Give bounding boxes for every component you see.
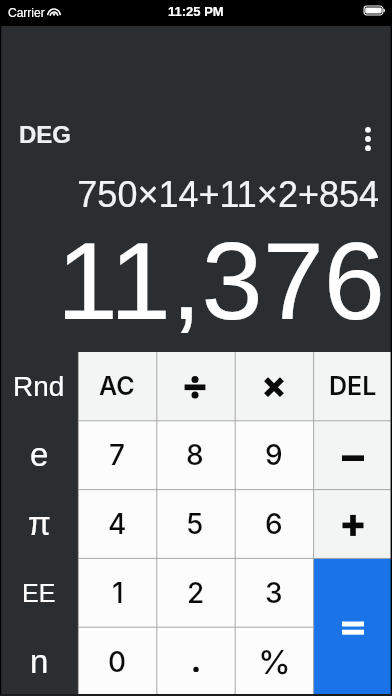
button[interactable]: Multiply (234, 352, 313, 420)
staticText: 7 (109, 438, 125, 472)
staticText: π (28, 505, 51, 542)
button[interactable]: 5 (156, 489, 234, 558)
button[interactable]: 1 (78, 558, 157, 627)
staticText: 11,376 (0, 219, 385, 342)
staticText: 8 (186, 438, 204, 472)
staticText: 1 (112, 576, 124, 610)
staticText: 750×14+11×2+854 (0, 174, 379, 214)
button[interactable]: EE (0, 558, 78, 627)
button[interactable]: % (235, 627, 313, 696)
button[interactable]: 2 (157, 558, 235, 627)
staticText: n (30, 643, 49, 680)
button[interactable]: 0 (78, 627, 157, 696)
button[interactable]: Minus (313, 420, 392, 489)
staticText: 9 (265, 438, 283, 472)
staticText: Rnd (13, 371, 65, 402)
button[interactable]: 7 (78, 420, 156, 489)
button[interactable]: e (0, 420, 78, 489)
button[interactable]: 6 (234, 489, 313, 558)
button[interactable]: More options (352, 123, 384, 155)
button[interactable]: Rnd (0, 352, 78, 420)
button[interactable]: n (0, 627, 78, 696)
button[interactable]: 9 (234, 420, 313, 489)
button[interactable]: π (0, 489, 78, 558)
button[interactable]: Decimal point (157, 627, 235, 696)
staticText: 3 (265, 576, 283, 610)
button[interactable]: 4 (78, 489, 156, 558)
staticText: DEG (19, 121, 72, 148)
staticText: EE (22, 579, 56, 607)
button[interactable]: Equals (313, 558, 392, 696)
staticText: AC (99, 371, 135, 401)
staticText: 4 (108, 507, 127, 541)
staticText: Carrier (8, 6, 45, 19)
staticText: e (30, 436, 49, 473)
button[interactable]: Divide (156, 352, 234, 420)
staticText: DEL (329, 371, 377, 401)
button[interactable]: DEL (313, 352, 392, 420)
staticText: 11:25 PM (168, 4, 224, 19)
staticText: 5 (186, 507, 204, 541)
staticText: 0 (108, 645, 127, 679)
button[interactable]: AC (78, 352, 156, 420)
button[interactable]: Plus (313, 489, 392, 558)
staticText: 6 (265, 507, 283, 541)
staticText: 2 (187, 576, 205, 610)
button[interactable]: 3 (235, 558, 313, 627)
staticText: % (258, 642, 291, 682)
button[interactable]: 8 (156, 420, 234, 489)
